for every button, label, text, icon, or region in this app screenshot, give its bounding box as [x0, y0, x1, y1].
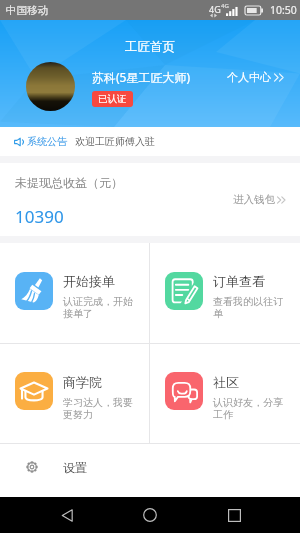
- button[interactable]: 社区: [150, 344, 300, 443]
- button[interactable]: 系统公告: [0, 127, 300, 156]
- staticText: 个人中心: [227, 70, 271, 84]
- button[interactable]: 已认证: [92, 91, 133, 107]
- staticText: 苏科(5星工匠大师): [92, 69, 191, 85]
- staticText: 社区: [213, 374, 239, 390]
- staticText: 10390: [15, 205, 64, 228]
- button[interactable]: 商学院: [0, 344, 149, 443]
- staticText: 10:50: [270, 3, 297, 17]
- staticText: 中国移动: [6, 4, 48, 17]
- button[interactable]: 订单查看: [150, 243, 300, 343]
- button[interactable]: 设置: [0, 444, 300, 490]
- button[interactable]: 进入钱包: [227, 187, 300, 212]
- button[interactable]: 个人中心: [221, 64, 300, 90]
- button[interactable]: 未提现总收益（元）: [0, 163, 300, 236]
- staticText: 已认证: [98, 93, 127, 105]
- staticText: 开始接单: [63, 273, 115, 289]
- staticText: 欢迎工匠师傅入驻: [75, 135, 155, 148]
- staticText: 订单查看: [213, 273, 265, 289]
- staticText: 系统公告: [27, 135, 67, 148]
- staticText: 认识好友，分享 工作: [213, 396, 283, 421]
- button[interactable]: Recent apps: [217, 498, 251, 532]
- button[interactable]: Avatar: [26, 62, 75, 111]
- button[interactable]: 开始接单: [0, 243, 149, 343]
- staticText: 4G: [209, 3, 221, 15]
- button[interactable]: Back: [50, 498, 84, 532]
- staticText: 商学院: [63, 374, 102, 390]
- staticText: 进入钱包: [233, 193, 275, 206]
- staticText: 学习达人，我要 更努力: [63, 396, 133, 421]
- staticText: 工匠首页: [125, 39, 175, 55]
- staticText: 未提现总收益（元）: [15, 175, 123, 190]
- staticText: 4G: [221, 2, 229, 10]
- staticText: 认证完成，开始 接单了: [63, 295, 133, 320]
- staticText: 查看我的以往订 单: [213, 295, 283, 320]
- staticText: 设置: [63, 460, 87, 475]
- button[interactable]: Home: [133, 498, 167, 532]
